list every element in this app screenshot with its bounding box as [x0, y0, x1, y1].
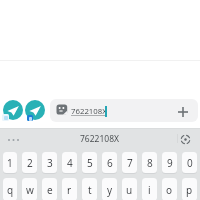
button[interactable]: p — [182, 178, 197, 200]
staticText: 7622108X — [71, 106, 107, 117]
staticText: w — [26, 183, 34, 197]
staticText: y — [107, 183, 113, 197]
staticText: 1 — [7, 156, 13, 170]
staticText: 2 — [27, 156, 33, 170]
button[interactable]: 8 — [142, 152, 157, 173]
staticText: 4 — [67, 156, 73, 170]
button[interactable]: y — [102, 178, 117, 200]
button[interactable]: 5 — [82, 152, 97, 173]
button[interactable] — [180, 134, 191, 145]
button[interactable]: e — [42, 178, 57, 200]
staticText: 0 — [187, 156, 193, 170]
button[interactable]: 1 — [3, 152, 17, 173]
button[interactable]: 3 — [42, 152, 57, 173]
button[interactable]: w — [22, 178, 37, 200]
button[interactable]: 6 — [102, 152, 117, 173]
staticText: i — [148, 183, 151, 197]
staticText: 7622108X — [80, 133, 120, 145]
staticText: o — [166, 183, 173, 197]
button[interactable]: o — [162, 178, 177, 200]
staticText: 8 — [147, 156, 153, 170]
button[interactable] — [7, 138, 21, 142]
button[interactable] — [3, 100, 23, 120]
button[interactable]: i — [142, 178, 157, 200]
staticText: u — [126, 183, 133, 197]
button[interactable]: 9 — [162, 152, 177, 173]
staticText: 6 — [107, 156, 113, 170]
button[interactable]: u — [122, 178, 137, 200]
button[interactable] — [178, 107, 188, 117]
staticText: 7 — [127, 156, 133, 170]
staticText: 3 — [47, 156, 53, 170]
staticText: r — [67, 183, 72, 197]
staticText: 5 — [87, 156, 93, 170]
button[interactable]: 0 — [182, 152, 197, 173]
staticText: e — [47, 183, 53, 197]
button[interactable] — [50, 99, 198, 122]
button[interactable]: 2 — [22, 152, 37, 173]
staticText: p — [186, 183, 193, 197]
staticText: 9 — [167, 156, 173, 170]
button[interactable]: 7 — [122, 152, 137, 173]
button[interactable]: 4 — [62, 152, 77, 173]
button[interactable]: t — [82, 178, 97, 200]
button[interactable] — [25, 100, 45, 120]
button[interactable]: r — [62, 178, 77, 200]
staticText: t — [88, 183, 92, 197]
staticText: q — [7, 183, 14, 197]
button[interactable]: q — [3, 178, 17, 200]
